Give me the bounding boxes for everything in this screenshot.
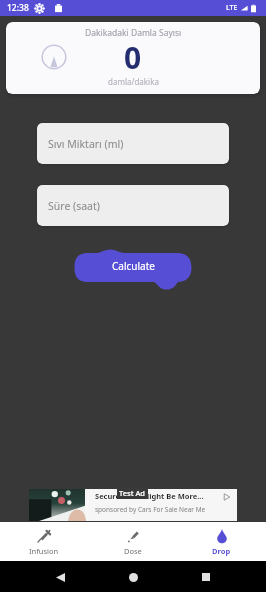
- button[interactable]: Drop: [177, 522, 266, 561]
- button[interactable]: Recent apps: [193, 564, 219, 590]
- staticText: Infusion: [29, 546, 59, 556]
- staticText: Secure Wi-Fi Might Be More...: [95, 491, 204, 501]
- button[interactable]: Calculate: [73, 250, 193, 282]
- staticText: Calculate: [112, 259, 155, 273]
- button[interactable]: Back: [47, 564, 73, 590]
- staticText: damla/dakika: [108, 76, 159, 87]
- button[interactable]: Infusion: [0, 522, 88, 561]
- button[interactable]: Home: [120, 564, 146, 590]
- staticText: sponsored by Cars For Sale Near Me: [95, 505, 206, 514]
- button[interactable]: Secure Wi-Fi Might Be More...: [29, 489, 237, 521]
- button[interactable]: Süre (saat): [37, 185, 229, 226]
- staticText: LTE: [226, 3, 238, 13]
- staticText: Dose: [124, 546, 142, 556]
- staticText: Drop: [212, 546, 231, 556]
- staticText: Sıvı Miktarı (ml): [48, 137, 124, 151]
- button[interactable]: Sıvı Miktarı (ml): [37, 123, 229, 164]
- staticText: Test Ad: [119, 488, 146, 498]
- staticText: Dakikadaki Damla Sayısı: [85, 27, 182, 39]
- staticText: Süre (saat): [48, 199, 100, 213]
- button[interactable]: Dose: [88, 522, 177, 561]
- staticText: 0: [124, 37, 142, 78]
- staticText: 12:38: [7, 2, 29, 14]
